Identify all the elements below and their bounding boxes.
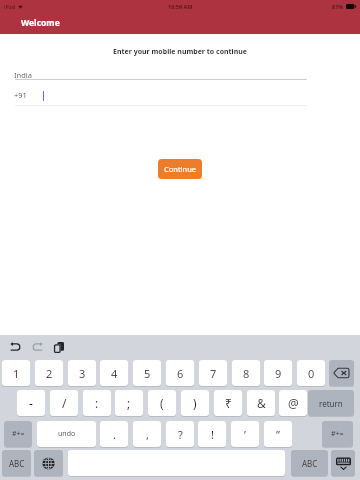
staticText: @ [288, 395, 299, 411]
staticText: ’ [244, 427, 246, 442]
button[interactable]: Hide keyboard [331, 450, 355, 476]
staticText: & [257, 395, 266, 411]
staticText: ” [276, 427, 280, 442]
button[interactable]: #+= [322, 421, 353, 447]
button[interactable]: 0 [297, 360, 325, 386]
button[interactable]: Switch keyboard [34, 450, 63, 476]
button[interactable]: - [17, 390, 45, 416]
button[interactable]: . [100, 421, 128, 447]
staticText: Continue [164, 164, 197, 174]
button[interactable]: Backspace [329, 360, 354, 386]
staticText: Welcome [21, 17, 60, 29]
staticText: 0 [308, 366, 315, 381]
staticText: 2 [46, 366, 53, 381]
button[interactable]: : [83, 390, 111, 416]
button[interactable]: return [308, 390, 354, 416]
staticText: Enter your mobile number to continue [0, 47, 360, 57]
staticText: return [319, 398, 343, 409]
staticText: ? [178, 427, 183, 442]
button[interactable]: ABC [291, 450, 328, 476]
button[interactable]: 9 [264, 360, 292, 386]
staticText: 10:59 AM [168, 3, 193, 10]
staticText: +91 [14, 90, 27, 100]
staticText: 9 [275, 366, 282, 381]
button[interactable]: ’ [231, 421, 259, 447]
staticText: 5 [144, 366, 151, 381]
staticText: ; [127, 395, 131, 411]
button[interactable]: ₹ [214, 390, 242, 416]
button[interactable]: Continue [158, 159, 202, 179]
staticText: 1 [13, 366, 20, 381]
button[interactable]: ) [181, 390, 209, 416]
staticText: / [62, 395, 67, 411]
staticText: ABC [9, 458, 25, 469]
button[interactable]: 7 [199, 360, 227, 386]
staticText: iPad [4, 3, 16, 10]
button[interactable]: & [247, 390, 275, 416]
button[interactable]: 1 [2, 360, 30, 386]
staticText: ) [193, 395, 197, 411]
staticText: : [95, 395, 99, 411]
button[interactable]: 5 [133, 360, 161, 386]
staticText: 3 [79, 366, 86, 381]
button[interactable]: ? [166, 421, 194, 447]
button[interactable]: Paste [50, 338, 68, 356]
staticText: - [29, 395, 33, 411]
staticText: India [14, 70, 32, 80]
button[interactable]: ABC [2, 450, 31, 476]
staticText: 7 [210, 366, 217, 381]
staticText: #+= [12, 429, 25, 439]
button[interactable]: 4 [100, 360, 128, 386]
staticText: #+= [331, 429, 344, 439]
button[interactable]: undo [37, 421, 96, 447]
button[interactable]: 2 [35, 360, 63, 386]
button[interactable]: Undo [6, 338, 24, 356]
button[interactable]: #+= [4, 421, 32, 447]
staticText: 6 [177, 366, 184, 381]
staticText: . [113, 427, 116, 442]
button[interactable]: 6 [166, 360, 194, 386]
button[interactable]: ; [115, 390, 143, 416]
button[interactable]: ” [264, 421, 292, 447]
button[interactable]: ( [148, 390, 176, 416]
staticText: , [146, 427, 149, 442]
button[interactable]: / [50, 390, 78, 416]
staticText: 8 [243, 366, 250, 381]
staticText: ! [211, 427, 214, 442]
staticText: 81% [332, 3, 344, 10]
staticText: ₹ [225, 395, 232, 411]
button[interactable]: 3 [68, 360, 96, 386]
staticText: ABC [302, 458, 318, 469]
staticText: undo [58, 429, 76, 439]
button[interactable]: ! [198, 421, 226, 447]
staticText: 4 [111, 366, 118, 381]
staticText: ( [160, 395, 164, 411]
button[interactable]: 8 [232, 360, 260, 386]
button[interactable]: @ [279, 390, 307, 416]
button[interactable]: Redo [28, 338, 46, 356]
button[interactable]: , [133, 421, 161, 447]
